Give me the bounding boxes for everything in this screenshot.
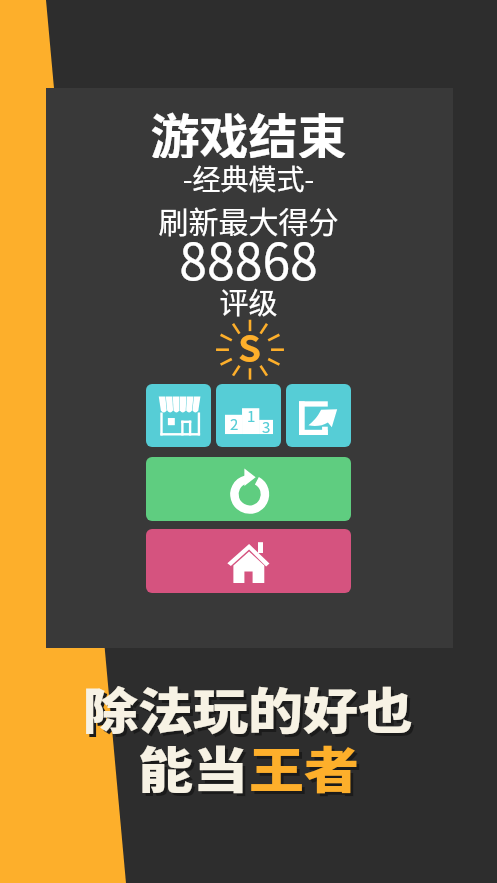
staticText: S [238,319,262,373]
staticText: 能当 [138,732,249,802]
staticText: 游戏结束 [0,98,497,158]
button[interactable]: Share [286,384,351,447]
button[interactable]: Shop [146,384,211,447]
staticText: 除法玩的好也 [86,676,417,746]
staticText: 88868 [0,222,497,282]
button[interactable]: Home [146,529,351,593]
staticText: 1 [247,405,256,427]
button[interactable]: Leaderboard [216,384,281,447]
staticText: 王者 [249,732,360,802]
staticText: 3 [262,416,271,438]
button[interactable]: Restart [146,457,351,521]
staticText: -经典模式- [0,158,497,198]
staticText: 除法玩的好也 [83,673,414,743]
staticText: 王者 [252,735,363,805]
staticText: 评级 [0,280,497,320]
staticText: 2 [230,413,239,435]
staticText: 刷新最大得分 [0,198,497,241]
staticText: 能当 [141,735,252,805]
